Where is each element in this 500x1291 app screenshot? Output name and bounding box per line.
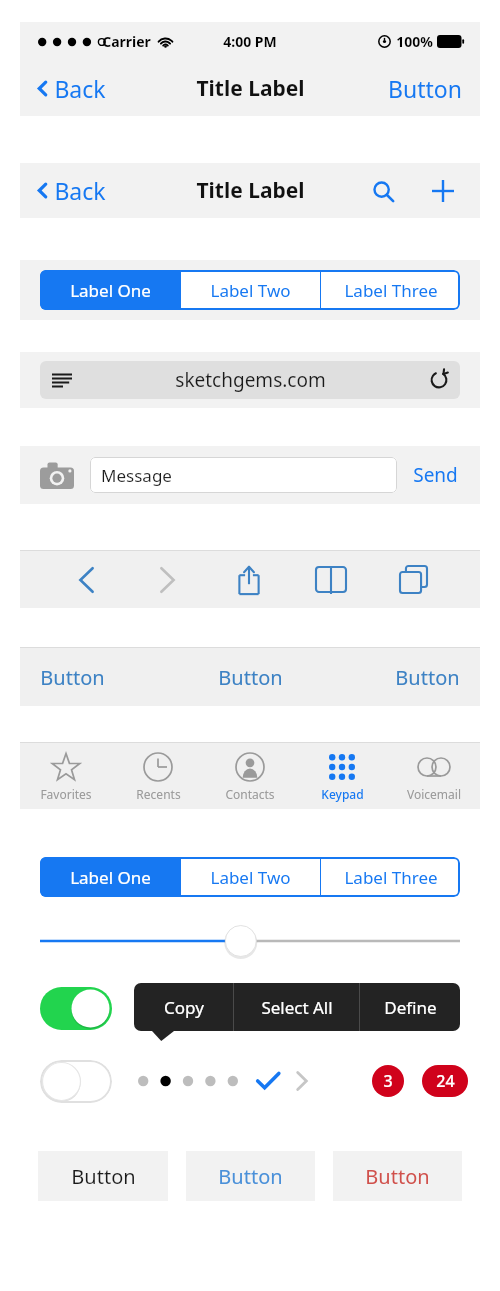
staticText: Message: [101, 464, 172, 487]
staticText: Button: [71, 1163, 136, 1190]
staticText: Title Label: [196, 176, 305, 205]
button[interactable]: Back: [46, 551, 127, 608]
staticText: Button: [395, 664, 460, 691]
staticText: Carrier: [102, 32, 151, 51]
button[interactable]: Share: [208, 551, 290, 608]
button[interactable]: Toggle: [40, 987, 112, 1030]
button[interactable]: Bookmarks: [290, 551, 372, 608]
button[interactable]: Reader: [40, 361, 460, 399]
button[interactable]: Voicemail: [388, 743, 480, 809]
button[interactable]: Send: [409, 456, 462, 494]
button[interactable]: Back: [34, 67, 110, 110]
staticText: Title Label: [196, 74, 305, 103]
staticText: Button: [218, 664, 283, 691]
staticText: Button: [388, 73, 462, 104]
button[interactable]: Button: [38, 1151, 168, 1201]
button[interactable]: Button: [180, 648, 320, 706]
button[interactable]: Label One: [40, 270, 180, 310]
staticText: Label One: [70, 279, 151, 302]
button[interactable]: More: [296, 1071, 308, 1091]
staticText: Recents: [136, 786, 181, 802]
button[interactable]: Recents: [112, 743, 204, 809]
staticText: Label Two: [210, 279, 291, 302]
button[interactable]: Message: [90, 457, 397, 493]
button[interactable]: Button: [333, 1151, 462, 1201]
button[interactable]: Add: [426, 174, 460, 208]
staticText: Label Three: [344, 279, 438, 302]
button[interactable]: Tabs: [372, 551, 454, 608]
staticText: Send: [413, 462, 458, 488]
button[interactable]: Button: [186, 1151, 315, 1201]
button[interactable]: Contacts: [204, 743, 296, 809]
staticText: Button: [218, 1163, 283, 1190]
button[interactable]: Slider: [222, 924, 256, 958]
button[interactable]: 24: [422, 1065, 468, 1097]
staticText: Keypad: [321, 786, 364, 802]
button[interactable]: 3: [372, 1065, 404, 1097]
staticText: Label Three: [344, 866, 438, 889]
staticText: Favorites: [40, 786, 92, 802]
staticText: 4:00 PM: [223, 32, 277, 51]
staticText: Contacts: [225, 786, 275, 802]
staticText: Label One: [70, 866, 151, 889]
other: Reload: [430, 371, 448, 389]
button[interactable]: Search: [367, 175, 400, 208]
button[interactable]: Select All: [234, 983, 359, 1031]
button[interactable]: Label One: [40, 857, 180, 897]
button[interactable]: Button: [384, 67, 466, 110]
button[interactable]: Label Three: [321, 270, 460, 310]
staticText: Button: [365, 1163, 430, 1190]
button[interactable]: Button: [320, 648, 460, 706]
button[interactable]: Toggle: [40, 1060, 112, 1103]
staticText: Select All: [261, 996, 333, 1019]
staticText: Define: [384, 996, 437, 1019]
staticText: 24: [436, 1070, 455, 1092]
staticText: sketchgems.com: [175, 367, 326, 393]
button[interactable]: Back: [34, 169, 110, 212]
button[interactable]: Check: [256, 1071, 280, 1091]
button[interactable]: Label Two: [181, 270, 320, 310]
staticText: Button: [40, 664, 105, 691]
button[interactable]: Label Three: [321, 857, 460, 897]
staticText: Label Two: [210, 866, 291, 889]
staticText: Back: [54, 175, 106, 206]
staticText: 3: [383, 1070, 393, 1092]
staticText: Copy: [164, 996, 204, 1019]
button[interactable]: Label Two: [181, 857, 320, 897]
staticText: Back: [54, 73, 106, 104]
button[interactable]: Forward: [127, 551, 208, 608]
staticText: 100%: [396, 32, 433, 51]
button[interactable]: Copy: [134, 983, 233, 1031]
button[interactable]: Camera: [38, 460, 76, 491]
other: Reader: [52, 373, 72, 388]
button[interactable]: Button: [40, 648, 180, 706]
button[interactable]: Keypad: [296, 743, 388, 809]
staticText: Voicemail: [407, 786, 461, 802]
button[interactable]: Define: [360, 983, 460, 1031]
button[interactable]: Favorites: [20, 743, 112, 809]
